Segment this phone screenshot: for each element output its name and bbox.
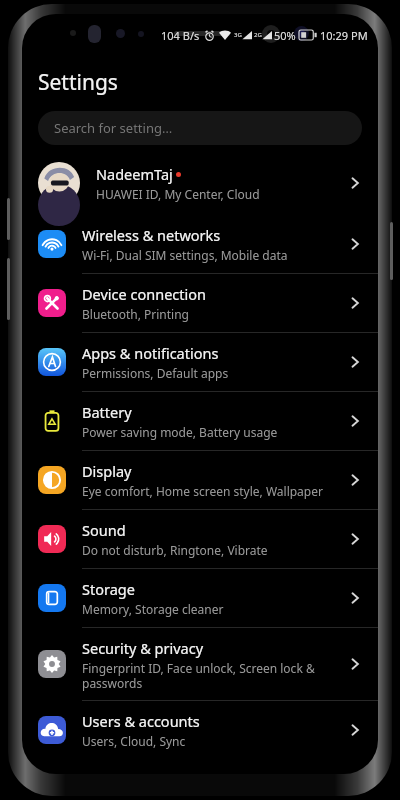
other: Device connection [38,289,66,317]
staticText: Storage [82,579,135,599]
staticText: Wi-Fi, Dual SIM settings, Mobile data [82,247,288,263]
staticText: Apps & notifications [82,343,219,363]
button[interactable]: Wireless and networks [22,215,378,274]
button[interactable]: Storage [22,569,378,628]
staticText: 50% [274,28,296,43]
staticText: Settings [38,68,118,97]
staticText: 2G [254,31,262,39]
staticText: Eye comfort, Home screen style, Wallpape… [82,483,323,499]
button[interactable]: Search for setting… [38,111,362,145]
staticText: Users & accounts [82,711,200,731]
button[interactable]: Sound [22,510,378,569]
button[interactable]: NadeemTaj [22,153,378,213]
button[interactable]: Device connection [22,274,378,333]
other: Wireless and networks [38,230,66,258]
button[interactable]: Security and privacy [22,628,378,701]
staticText: 104 B/s [161,28,200,43]
button[interactable]: Battery [22,392,378,451]
staticText: Fingerprint ID, Face unlock, Screen lock… [82,660,315,691]
staticText: Permissions, Default apps [82,365,229,381]
staticText: Security & privacy [82,638,204,658]
staticText: HUAWEI ID, My Center, Cloud [96,186,260,202]
staticText: 3G [234,31,242,39]
other: Users and accounts [38,716,66,744]
staticText: Sound [82,520,126,540]
button[interactable]: Display [22,451,378,510]
other: Sound [38,525,66,553]
button[interactable]: Users and accounts [22,701,378,759]
other: Security and privacy [38,650,66,678]
other: Apps and notifications [38,348,66,376]
staticText: Battery [82,402,132,422]
button[interactable]: Apps and notifications [22,333,378,392]
staticText: Do not disturb, Ringtone, Vibrate [82,542,268,558]
staticText: Display [82,461,132,481]
other: Battery [38,407,66,435]
staticText: Bluetooth, Printing [82,306,189,322]
staticText: NadeemTaj [96,164,173,184]
staticText: 10:29 PM [320,28,368,43]
other: Storage [38,584,66,612]
staticText: Wireless & networks [82,225,221,245]
staticText: Users, Cloud, Sync [82,733,186,749]
staticText: Search for setting… [54,119,173,137]
staticText: Memory, Storage cleaner [82,601,224,617]
other: Display [38,466,66,494]
staticText: Power saving mode, Battery usage [82,424,278,440]
staticText: Device connection [82,284,206,304]
